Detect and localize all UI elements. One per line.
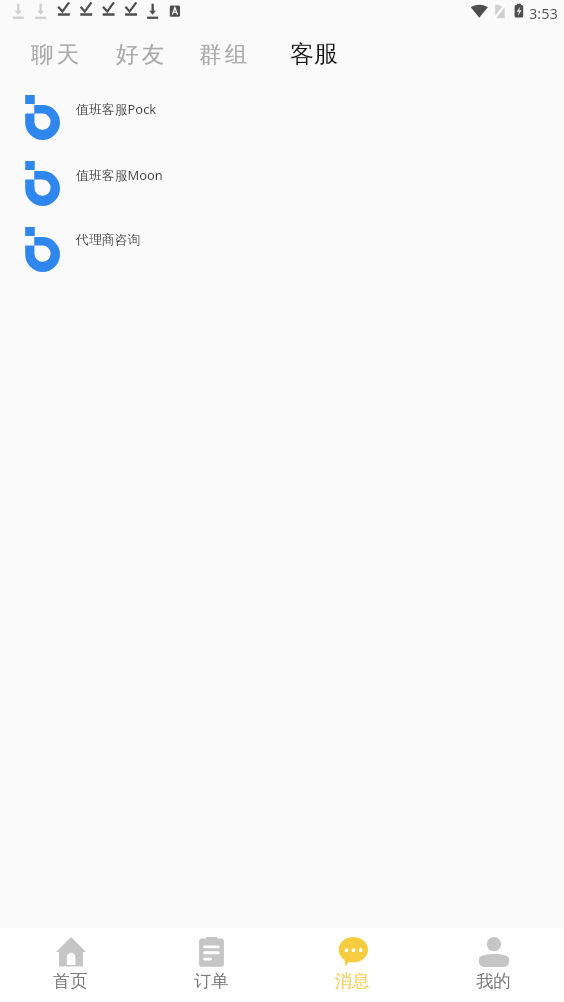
button[interactable]: 消息 bbox=[282, 928, 423, 1002]
staticText: 首页 bbox=[53, 970, 88, 992]
button[interactable]: 代理商咨询 bbox=[0, 218, 564, 284]
button[interactable]: 值班客服Moon bbox=[0, 152, 564, 218]
staticText: 代理商咨询 bbox=[76, 232, 141, 248]
staticText: 群组 bbox=[199, 40, 251, 68]
staticText: 3:53 bbox=[529, 3, 558, 23]
button[interactable]: 群组 bbox=[199, 38, 251, 74]
staticText: 客服 bbox=[290, 39, 338, 69]
button[interactable]: 订单 bbox=[141, 928, 282, 1002]
staticText: 消息 bbox=[335, 970, 370, 992]
staticText: 我的 bbox=[476, 970, 511, 992]
button[interactable]: 好友 bbox=[116, 38, 168, 74]
staticText: 值班客服Pock bbox=[76, 100, 157, 118]
staticText: 好友 bbox=[116, 40, 168, 68]
staticText: 值班客服Moon bbox=[76, 166, 163, 184]
button[interactable]: 客服 bbox=[290, 37, 338, 75]
button[interactable]: 首页 bbox=[0, 928, 141, 1002]
button[interactable]: 值班客服Pock bbox=[0, 86, 564, 152]
button[interactable]: 我的 bbox=[423, 928, 564, 1002]
staticText: 订单 bbox=[194, 970, 229, 992]
staticText: 聊天 bbox=[31, 40, 83, 68]
button[interactable]: 聊天 bbox=[31, 38, 83, 74]
